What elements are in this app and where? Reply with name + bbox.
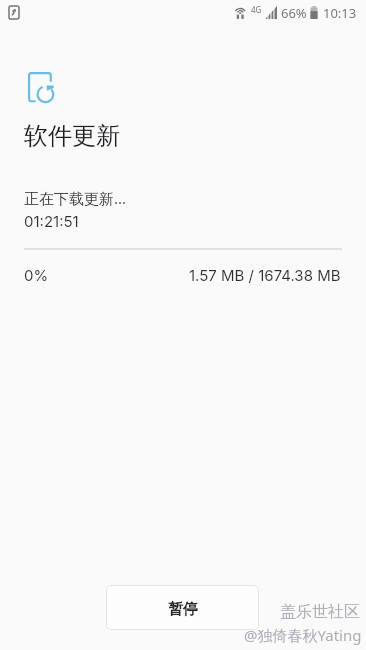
staticText: @独倚春秋Yating [244,625,362,645]
staticText: 1.57 MB / 1674.38 MB [189,266,341,284]
staticText: 正在下载更新... [24,188,127,208]
other: Activity notification [9,6,19,19]
staticText: 0% [24,266,49,284]
other: Software update [28,72,55,102]
staticText: 暂停 [168,600,198,619]
staticText: 盖乐世社区 [280,602,360,622]
other: Mobile signal [265,6,277,19]
staticText: 4G [251,4,262,15]
staticText: 66% [281,4,307,22]
other: Battery 66 percent [310,6,318,19]
button[interactable]: 暂停 [106,585,259,630]
staticText: 01:21:51 [24,212,79,230]
staticText: 10:13 [323,4,357,22]
other: Wi-Fi [235,6,246,19]
staticText: 软件更新 [24,121,120,151]
